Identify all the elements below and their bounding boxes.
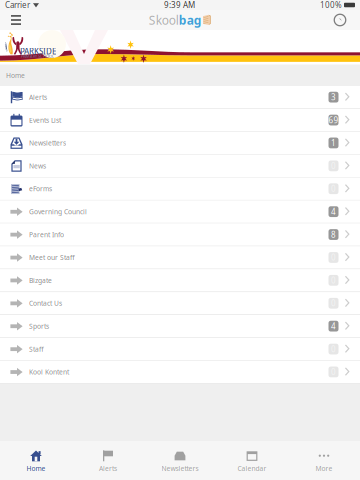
staticText: eForms: [29, 184, 52, 193]
staticText: Calendar: [237, 464, 266, 473]
staticText: Contact Us: [29, 299, 62, 308]
staticText: Bizgate: [29, 276, 52, 285]
staticText: 9:39 AM: [164, 0, 195, 10]
button[interactable]: More: [288, 441, 360, 480]
staticText: 1: [331, 138, 336, 148]
staticText: PRIMARY SCHOOL: [21, 54, 54, 59]
staticText: 69: [328, 115, 338, 125]
button[interactable]: Staff: [0, 338, 360, 361]
staticText: 0: [331, 298, 336, 308]
staticText: 4: [331, 321, 336, 331]
staticText: 0: [331, 183, 336, 194]
staticText: Staff: [29, 345, 44, 353]
staticText: Home: [6, 71, 25, 80]
staticText: 100%: [320, 0, 342, 10]
staticText: Carrier: [5, 0, 30, 10]
staticText: 0: [331, 160, 336, 171]
button[interactable]: Refresh: [326, 10, 354, 30]
staticText: Parent Info: [29, 230, 64, 239]
button[interactable]: Menu: [2, 10, 30, 30]
button[interactable]: Calendar: [216, 441, 288, 480]
staticText: 0: [331, 367, 336, 377]
staticText: 0: [331, 275, 336, 286]
button[interactable]: Home: [0, 441, 72, 480]
button[interactable]: News: [0, 155, 360, 178]
staticText: News: [29, 161, 46, 170]
button[interactable]: Kool Kontent: [0, 361, 360, 384]
staticText: Alerts: [99, 464, 117, 473]
staticText: bag: [179, 12, 202, 28]
staticText: Skool: [149, 12, 179, 28]
staticText: 4: [331, 206, 336, 217]
button[interactable]: Sports: [0, 315, 360, 338]
staticText: PARKSIDE: [20, 46, 56, 57]
staticText: 3: [331, 92, 336, 102]
staticText: 8: [331, 229, 336, 240]
button[interactable]: Governing Council: [0, 200, 360, 223]
button[interactable]: Newsletters: [0, 132, 360, 155]
button[interactable]: Alerts: [0, 86, 360, 109]
button[interactable]: Meet our Staff: [0, 246, 360, 269]
button[interactable]: Newsletters: [144, 441, 216, 480]
staticText: More: [315, 464, 332, 473]
staticText: Sports: [29, 322, 49, 331]
staticText: Newsletters: [161, 464, 198, 473]
button[interactable]: Events List: [0, 109, 360, 132]
button[interactable]: eForms: [0, 178, 360, 200]
button[interactable]: Parent Info: [0, 223, 360, 246]
staticText: Kool Kontent: [29, 367, 69, 376]
staticText: Alerts: [29, 93, 47, 102]
staticText: 0: [331, 344, 336, 354]
button[interactable]: Bizgate: [0, 269, 360, 292]
staticText: Home: [26, 464, 45, 473]
button[interactable]: Alerts: [72, 441, 144, 480]
staticText: Newsletters: [29, 138, 66, 147]
staticText: Governing Council: [29, 207, 87, 216]
staticText: Events List: [29, 116, 61, 124]
button[interactable]: Contact Us: [0, 292, 360, 315]
staticText: Meet our Staff: [29, 253, 75, 262]
staticText: 0: [331, 252, 336, 263]
